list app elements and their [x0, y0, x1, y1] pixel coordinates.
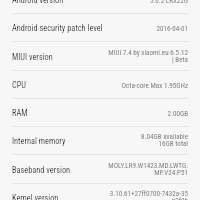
staticText: MIUI version: [12, 52, 53, 62]
staticText: MIUI 7.4 by xiaomi.eu 6.5.12: [108, 48, 188, 56]
staticText: -g3f8b: [169, 196, 188, 200]
button[interactable]: Baseband version: [0, 156, 200, 184]
button[interactable]: Kernel version: [0, 184, 200, 200]
staticText: 2.00GB: [167, 109, 188, 117]
button[interactable]: Android version: [0, 0, 200, 14]
staticText: CPU: [12, 80, 26, 90]
staticText: MOLY.LR9.W1423.MD.LWTG.: [108, 161, 188, 169]
button[interactable]: Android security patch level: [0, 14, 200, 42]
staticText: 3.10.61+27ff0700-7432a-35: [109, 189, 188, 197]
staticText: 2016-04-01: [156, 24, 188, 32]
staticText: MP.V24.P51: [154, 168, 188, 176]
staticText: Android security patch level: [12, 23, 103, 33]
staticText: RAM: [12, 108, 28, 118]
staticText: Baseband version: [12, 165, 71, 175]
button[interactable]: MIUI version: [0, 43, 200, 71]
staticText: 16GB total: [158, 139, 188, 147]
button[interactable]: Internal memory: [0, 127, 200, 155]
staticText: | Beta: [171, 55, 188, 63]
staticText: 5.0.2 LRX22G: [149, 0, 188, 4]
staticText: Kernel version: [12, 193, 59, 200]
button[interactable]: RAM: [0, 99, 200, 127]
staticText: Internal memory: [12, 136, 66, 146]
button[interactable]: CPU: [0, 71, 200, 99]
staticText: Android version: [12, 0, 64, 5]
staticText: 8.04GB available: [141, 132, 188, 140]
staticText: Octa-core Max 1.95GHz: [121, 81, 188, 89]
